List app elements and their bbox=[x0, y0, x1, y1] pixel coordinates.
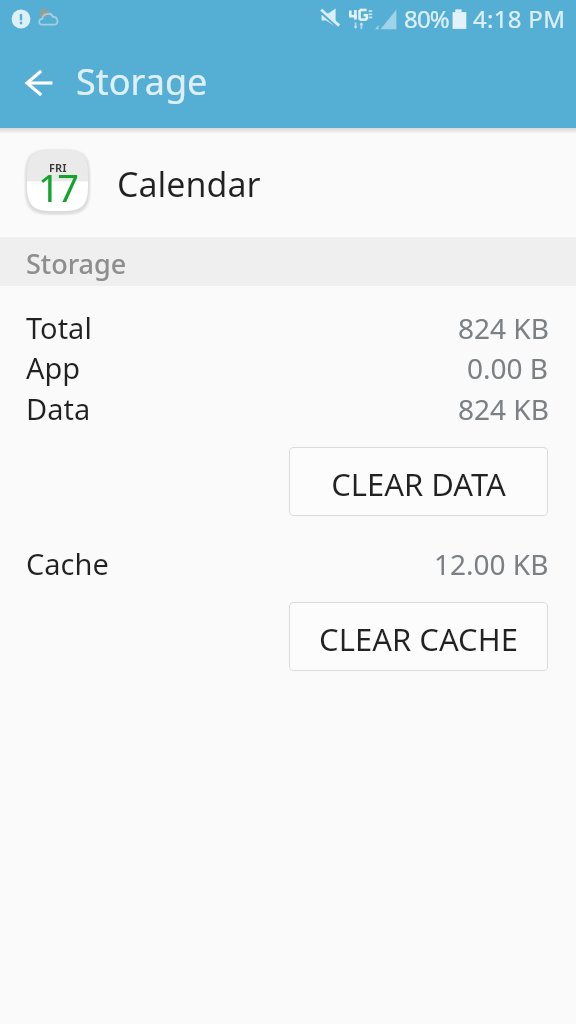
staticText: Data bbox=[26, 389, 91, 428]
button[interactable]: FRI bbox=[0, 129, 576, 237]
button[interactable]: CLEAR CACHE bbox=[289, 602, 548, 671]
staticText: Calendar bbox=[117, 161, 261, 207]
staticText: 17 bbox=[38, 161, 77, 213]
staticText: 0.00 B bbox=[467, 349, 549, 387]
staticText: App bbox=[26, 348, 81, 387]
staticText: Cache bbox=[26, 544, 109, 583]
staticText: CLEAR CACHE bbox=[319, 618, 518, 660]
button[interactable]: Total bbox=[0, 307, 576, 348]
staticText: 80% bbox=[404, 2, 449, 35]
button[interactable]: Cache bbox=[0, 543, 576, 584]
staticText: 824 KB bbox=[458, 309, 549, 347]
staticText: Total bbox=[26, 308, 92, 347]
staticText: 4:18 PM bbox=[473, 2, 566, 35]
button[interactable]: CLEAR DATA bbox=[289, 447, 548, 516]
staticText: 824 KB bbox=[458, 390, 549, 428]
staticText: CLEAR DATA bbox=[331, 463, 506, 505]
button[interactable]: Data bbox=[0, 388, 576, 429]
button[interactable]: Navigate up bbox=[12, 54, 70, 112]
staticText: FRI bbox=[49, 160, 67, 175]
staticText: 12.00 KB bbox=[434, 545, 549, 583]
staticText: Storage bbox=[26, 245, 127, 282]
button[interactable]: App bbox=[0, 347, 576, 388]
staticText: Storage bbox=[76, 57, 208, 106]
